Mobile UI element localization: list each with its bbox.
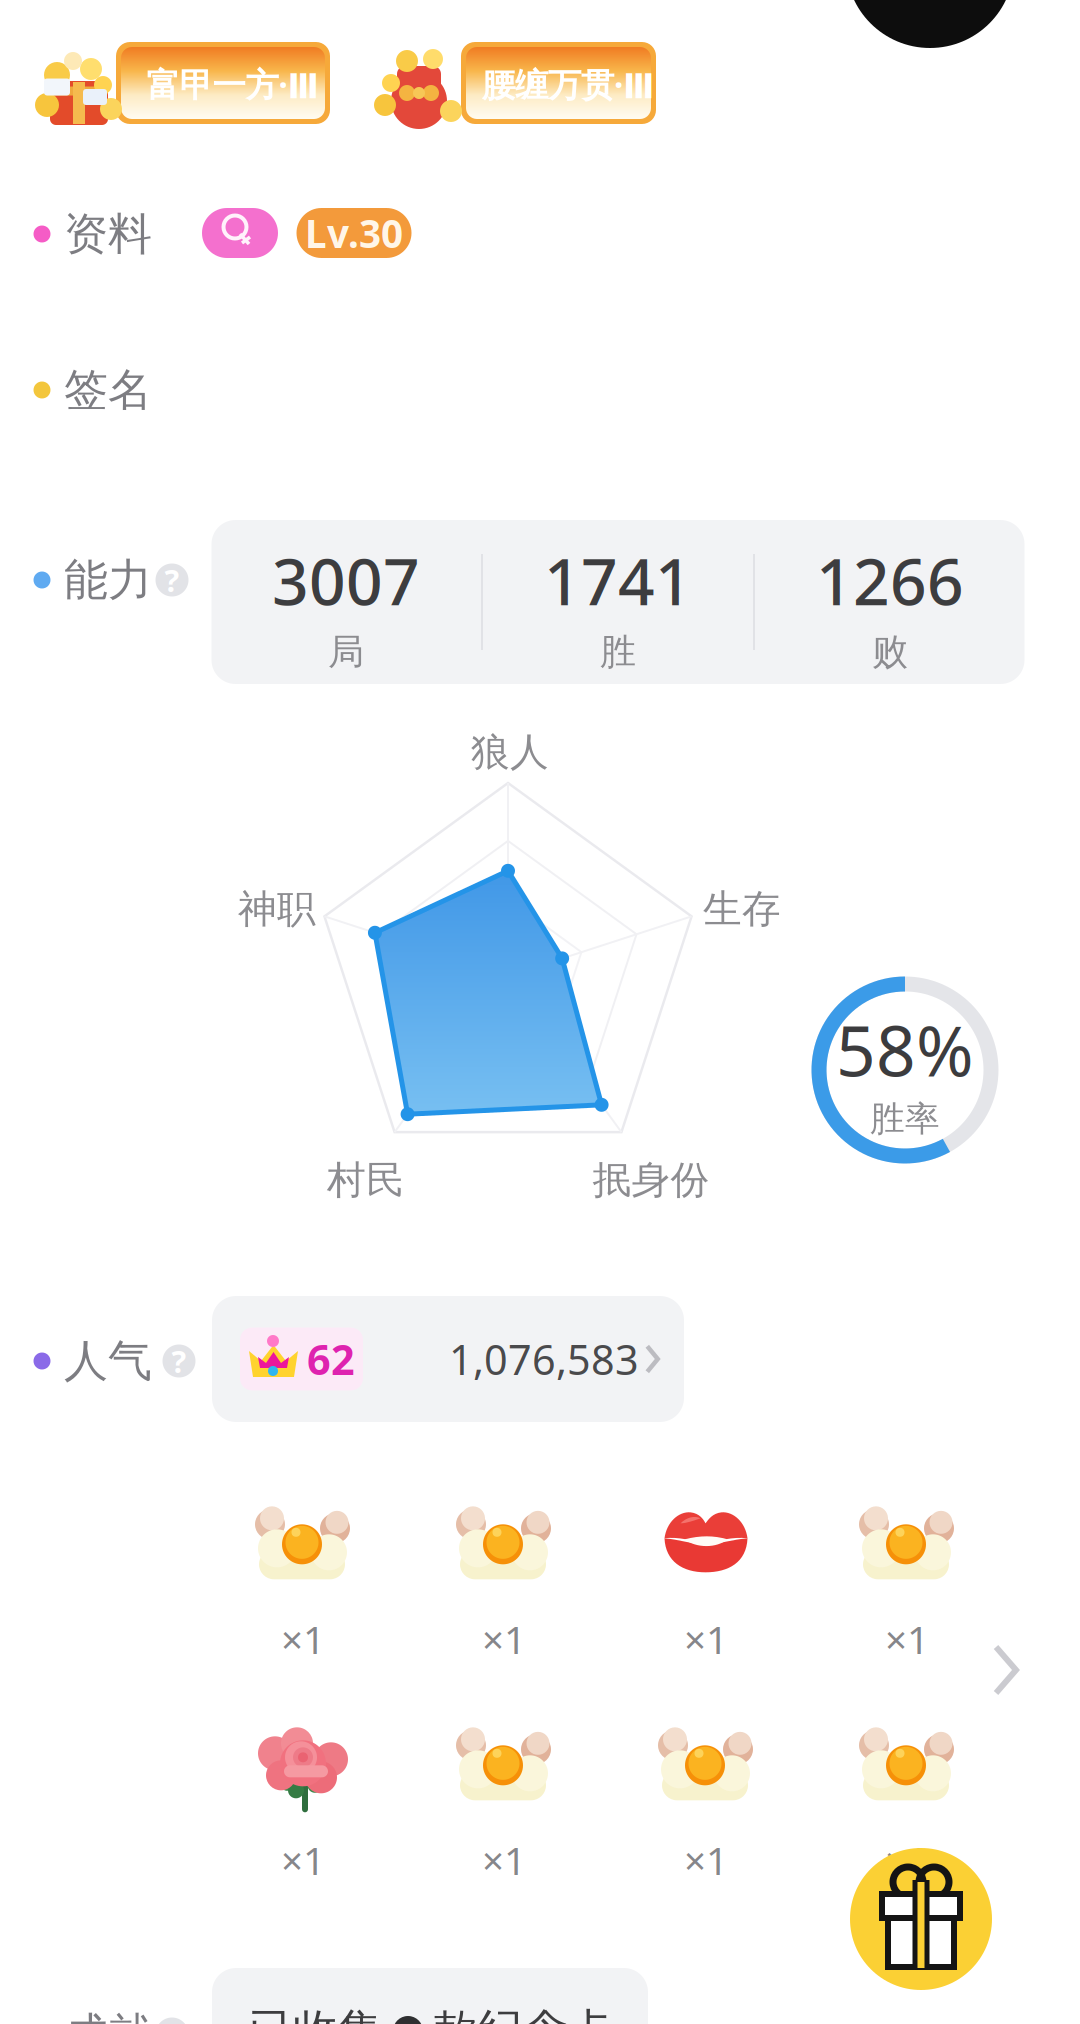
staticText: 3007	[272, 538, 420, 623]
staticText: 人气	[64, 1334, 152, 1388]
staticText: ?	[171, 1341, 186, 1381]
button[interactable]: Gift ×1	[616, 1718, 796, 1888]
staticText: 生存	[703, 885, 781, 933]
button[interactable]: Gift ×1	[817, 1497, 997, 1667]
staticText: ×1	[281, 1834, 325, 1886]
staticText: 能力	[64, 553, 152, 607]
staticText: ×1	[684, 1834, 728, 1886]
staticText: 资料	[64, 207, 152, 261]
staticText: 局	[328, 630, 364, 674]
button[interactable]: Gift ×1	[616, 1497, 796, 1667]
button[interactable]: Gift ×1	[213, 1718, 393, 1888]
staticText: 富甲一方·Ⅲ	[146, 62, 319, 106]
button[interactable]: Gift ×1	[817, 1718, 997, 1888]
button[interactable]: Gift ×1	[414, 1497, 594, 1667]
button[interactable]: More gifts	[993, 1644, 1019, 1696]
staticText: 62	[307, 1332, 355, 1386]
staticText: 已收集	[248, 2003, 383, 2024]
staticText: 1266	[816, 538, 964, 623]
button[interactable]: 腰缠万贯·Ⅲ	[372, 35, 656, 131]
staticText: 签名	[64, 363, 152, 417]
staticText: 款纪念卡	[433, 2003, 613, 2024]
staticText: 58%	[836, 1004, 974, 1096]
staticText: 败	[872, 630, 908, 674]
staticText: ×1	[885, 1613, 929, 1665]
button[interactable]: 62	[212, 1296, 684, 1422]
staticText: 胜率	[870, 1098, 940, 1140]
staticText: 抿身份	[592, 1156, 709, 1204]
staticText: 1,076,583	[449, 1332, 639, 1386]
button[interactable]: Lv.30	[296, 208, 411, 258]
staticText: ×1	[482, 1834, 526, 1886]
button[interactable]: Gift ×1	[414, 1718, 594, 1888]
staticText: ×1	[281, 1613, 325, 1665]
button[interactable]: Gift ×1	[213, 1497, 393, 1667]
button[interactable]: Gender: female	[202, 208, 278, 258]
staticText: ×1	[482, 1613, 526, 1665]
staticText: 成就	[64, 2007, 152, 2024]
staticText: 神职	[238, 885, 316, 933]
staticText: ×1	[684, 1613, 728, 1665]
staticText: 狼人	[471, 728, 549, 776]
staticText: 胜	[600, 630, 636, 674]
staticText: Lv.30	[305, 207, 403, 259]
staticText: ?	[164, 560, 179, 600]
button[interactable]: 已收集	[212, 1968, 648, 2024]
staticText: 1741	[544, 538, 692, 623]
staticText: ×1	[885, 1834, 929, 1886]
staticText: ?	[164, 2014, 179, 2024]
staticText: 腰缠万贯·Ⅲ	[482, 62, 655, 106]
button[interactable]: Send gift	[850, 1848, 992, 1990]
staticText: 村民	[327, 1156, 405, 1204]
button[interactable]: 富甲一方·Ⅲ	[27, 35, 330, 131]
